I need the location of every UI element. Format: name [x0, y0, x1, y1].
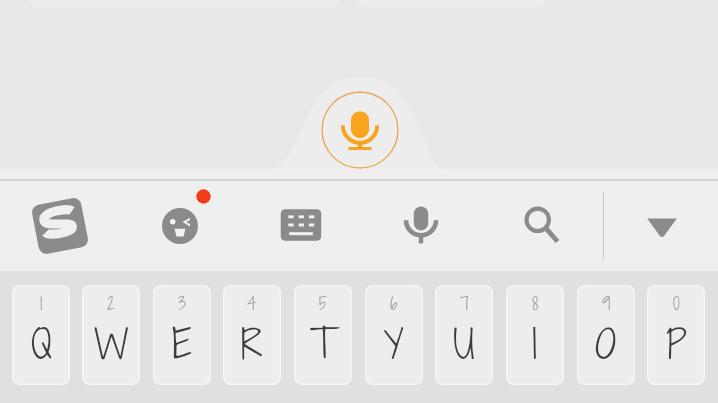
staticText: 7: [460, 291, 469, 316]
staticText: 9: [602, 291, 611, 316]
staticText: 0: [673, 291, 680, 316]
staticText: T: [310, 317, 336, 372]
button[interactable]: Hide keyboard: [632, 196, 692, 256]
button[interactable]: 6: [365, 285, 423, 385]
button[interactable]: Voice input: [321, 91, 399, 169]
staticText: P: [666, 317, 687, 372]
staticText: U: [453, 317, 475, 372]
staticText: W: [94, 317, 129, 372]
button[interactable]: 5: [294, 285, 352, 385]
button[interactable]: 4: [223, 285, 281, 385]
button[interactable]: 2: [82, 285, 140, 385]
button[interactable]: Search: [508, 193, 572, 257]
button[interactable]: 7: [435, 285, 493, 385]
staticText: 6: [390, 291, 398, 316]
staticText: 5: [319, 291, 327, 316]
button[interactable]: 8: [506, 285, 564, 385]
staticText: I: [532, 317, 538, 372]
staticText: Q: [31, 317, 52, 372]
staticText: Y: [384, 317, 404, 372]
button[interactable]: 9: [577, 285, 635, 385]
staticText: R: [241, 317, 263, 372]
button[interactable]: 1: [12, 285, 70, 385]
button[interactable]: 3: [153, 285, 211, 385]
staticText: O: [595, 317, 617, 372]
staticText: 4: [247, 291, 257, 316]
button[interactable]: 0: [647, 285, 705, 385]
button[interactable]: Swype: [28, 194, 92, 258]
button[interactable]: Voice typing: [389, 193, 453, 257]
button[interactable]: Emoji: [148, 194, 212, 258]
staticText: 3: [178, 291, 186, 316]
staticText: E: [172, 317, 193, 372]
staticText: 2: [107, 291, 115, 316]
button[interactable]: Keyboard layout: [269, 193, 333, 257]
staticText: 8: [532, 291, 539, 316]
staticText: 1: [40, 291, 43, 316]
